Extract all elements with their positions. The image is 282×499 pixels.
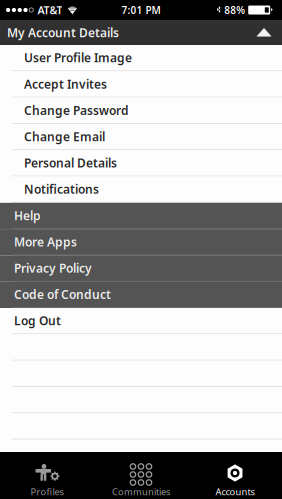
button[interactable]: Accept Invites: [0, 71, 282, 98]
button[interactable]: Log Out: [0, 308, 282, 334]
button[interactable]: Privacy Policy: [0, 255, 282, 282]
button[interactable]: Collapse section: [252, 21, 276, 43]
button[interactable]: User Profile Image: [0, 45, 282, 71]
staticText: Change Password: [24, 102, 129, 118]
staticText: More Apps: [14, 234, 77, 250]
button[interactable]: Personal Details: [0, 150, 282, 176]
staticText: Log Out: [14, 312, 61, 329]
button[interactable]: Profiles: [0, 452, 94, 499]
staticText: Change Email: [24, 128, 105, 145]
staticText: Accept Invites: [24, 76, 107, 92]
staticText: Communities: [112, 485, 170, 498]
button[interactable]: More Apps: [0, 229, 282, 255]
button[interactable]: Notifications: [0, 176, 282, 203]
staticText: My Account Details: [7, 24, 119, 41]
button[interactable]: Change Password: [0, 98, 282, 124]
button[interactable]: Communities: [94, 452, 188, 499]
staticText: Notifications: [24, 181, 99, 197]
button[interactable]: Help: [0, 203, 282, 229]
staticText: Privacy Policy: [14, 260, 92, 276]
staticText: Help: [14, 207, 41, 224]
staticText: User Profile Image: [24, 49, 132, 66]
button[interactable]: Change Email: [0, 124, 282, 150]
staticText: 88%: [224, 3, 245, 17]
staticText: Code of Conduct: [14, 286, 111, 302]
button[interactable]: Code of Conduct: [0, 282, 282, 308]
staticText: AT&T: [37, 3, 62, 17]
button[interactable]: Accounts: [188, 452, 282, 499]
staticText: Personal Details: [24, 155, 117, 171]
staticText: Accounts: [215, 485, 254, 498]
staticText: Profiles: [30, 485, 63, 498]
staticText: 7:01 PM: [121, 3, 160, 17]
